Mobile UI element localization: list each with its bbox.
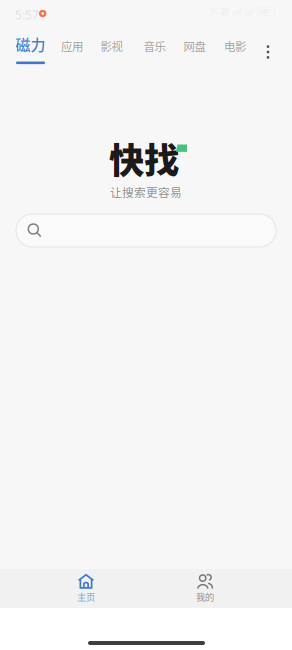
button[interactable]: 主页 — [56, 569, 116, 608]
staticText: 影视 — [100, 38, 122, 54]
staticText: 电影 — [224, 38, 246, 54]
staticText: 主页 — [77, 590, 95, 603]
staticText: 应用 — [61, 38, 83, 54]
button[interactable]: 网盘 — [175, 36, 213, 68]
button[interactable]: 音乐 — [135, 36, 173, 68]
button[interactable]: 应用 — [53, 36, 91, 68]
staticText: 磁力 — [15, 33, 45, 55]
staticText: 网盘 — [183, 38, 205, 54]
staticText: 我的 — [196, 590, 214, 603]
button[interactable]: 电影 — [216, 36, 254, 68]
button[interactable]: 磁力 — [11, 36, 49, 68]
button[interactable]: 我的 — [175, 569, 235, 608]
staticText: 让搜索更容易 — [110, 183, 182, 200]
staticText: 5:57 — [15, 7, 39, 23]
button[interactable]: More — [258, 39, 278, 65]
staticText: 快找 — [109, 132, 179, 184]
button[interactable]: Search — [16, 214, 276, 247]
button[interactable]: 影视 — [92, 36, 130, 68]
staticText: 音乐 — [143, 38, 165, 54]
